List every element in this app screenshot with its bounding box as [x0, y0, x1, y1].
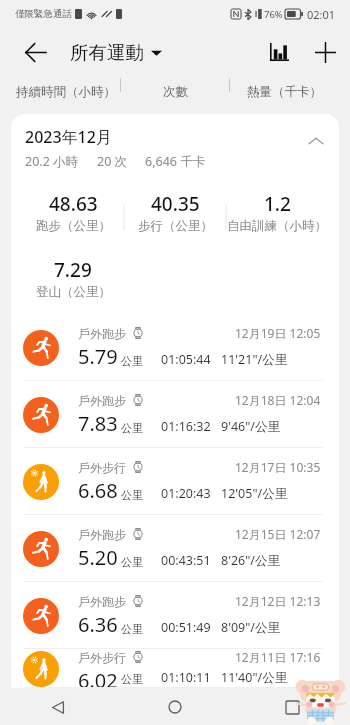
- staticText: 5.20: [78, 544, 118, 571]
- button[interactable]: 戶外跑步: [11, 515, 339, 582]
- staticText: 戶外跑步: [78, 527, 126, 542]
- staticText: 公里: [121, 488, 143, 502]
- staticText: 戶外跑步: [78, 393, 126, 408]
- staticText: 20 次: [97, 153, 128, 170]
- staticText: 6.02: [78, 667, 118, 688]
- staticText: 熱量（千卡）: [247, 84, 322, 100]
- staticText: 2023年12月: [25, 126, 112, 148]
- button[interactable]: Add: [303, 30, 347, 74]
- staticText: 00:43:51: [161, 552, 211, 569]
- staticText: 7.83: [78, 410, 118, 437]
- staticText: 登山（公里）: [36, 284, 111, 300]
- staticText: 12月15日 12:07: [235, 526, 321, 542]
- button[interactable]: Back: [11, 28, 59, 76]
- button[interactable]: 戶外跑步: [11, 582, 339, 649]
- staticText: 公里: [121, 421, 143, 435]
- button[interactable]: 戶外步行: [11, 649, 339, 688]
- staticText: 20.2 小時: [25, 153, 79, 170]
- button[interactable]: Statistics: [257, 30, 301, 74]
- staticText: 跑步（公里）: [36, 218, 111, 234]
- staticText: 戶外跑步: [78, 594, 126, 609]
- staticText: 40.35: [151, 191, 200, 217]
- staticText: 12月11日 17:16: [235, 649, 321, 665]
- staticText: 01:20:43: [161, 485, 211, 502]
- staticText: 00:51:49: [161, 619, 211, 636]
- button[interactable]: 戶外跑步: [11, 314, 339, 381]
- staticText: 76%: [264, 8, 283, 21]
- staticText: 5.79: [78, 343, 118, 370]
- staticText: 次數: [163, 84, 188, 100]
- button[interactable]: Home: [157, 689, 193, 725]
- staticText: 公里: [121, 555, 143, 569]
- staticText: 8'26"/公里: [221, 552, 281, 569]
- staticText: 48.63: [49, 191, 98, 217]
- staticText: 1.2: [264, 191, 291, 217]
- button[interactable]: 戶外步行: [11, 448, 339, 515]
- staticText: 僅限緊急通話: [15, 8, 72, 20]
- staticText: 12'05"/公里: [221, 485, 288, 502]
- staticText: 11'21"/公里: [221, 351, 288, 368]
- staticText: 7.29: [54, 257, 92, 283]
- staticText: 公里: [121, 672, 143, 686]
- staticText: 11'40"/公里: [221, 669, 288, 686]
- staticText: 戶外跑步: [78, 326, 126, 341]
- button[interactable]: Collapse: [305, 130, 327, 152]
- staticText: 自由訓練（小時）: [227, 218, 327, 234]
- staticText: 步行（公里）: [138, 218, 213, 234]
- staticText: 12月12日 12:13: [235, 593, 321, 609]
- staticText: 6.36: [78, 611, 118, 638]
- staticText: 所有運動: [70, 41, 144, 64]
- button[interactable]: 所有運動: [68, 35, 164, 70]
- staticText: 12月17日 10:35: [235, 459, 321, 475]
- staticText: 公里: [121, 354, 143, 368]
- staticText: 01:10:11: [161, 669, 211, 686]
- button[interactable]: Back: [40, 689, 76, 725]
- staticText: 8'09"/公里: [221, 619, 281, 636]
- staticText: 12月19日 12:05: [235, 325, 321, 341]
- staticText: 6.68: [78, 477, 118, 504]
- staticText: 戶外步行: [78, 650, 126, 665]
- staticText: 戶外步行: [78, 460, 126, 475]
- staticText: 01:05:44: [161, 351, 211, 368]
- button[interactable]: 戶外跑步: [11, 381, 339, 448]
- staticText: 9'46"/公里: [221, 418, 281, 435]
- staticText: 公里: [121, 622, 143, 636]
- staticText: 6,646 千卡: [145, 153, 206, 170]
- staticText: 01:16:32: [161, 418, 211, 435]
- staticText: 02:01: [307, 7, 336, 22]
- staticText: 持續時間（小時）: [16, 84, 116, 100]
- button[interactable]: Recents: [274, 689, 310, 725]
- staticText: 12月18日 12:04: [235, 392, 321, 408]
